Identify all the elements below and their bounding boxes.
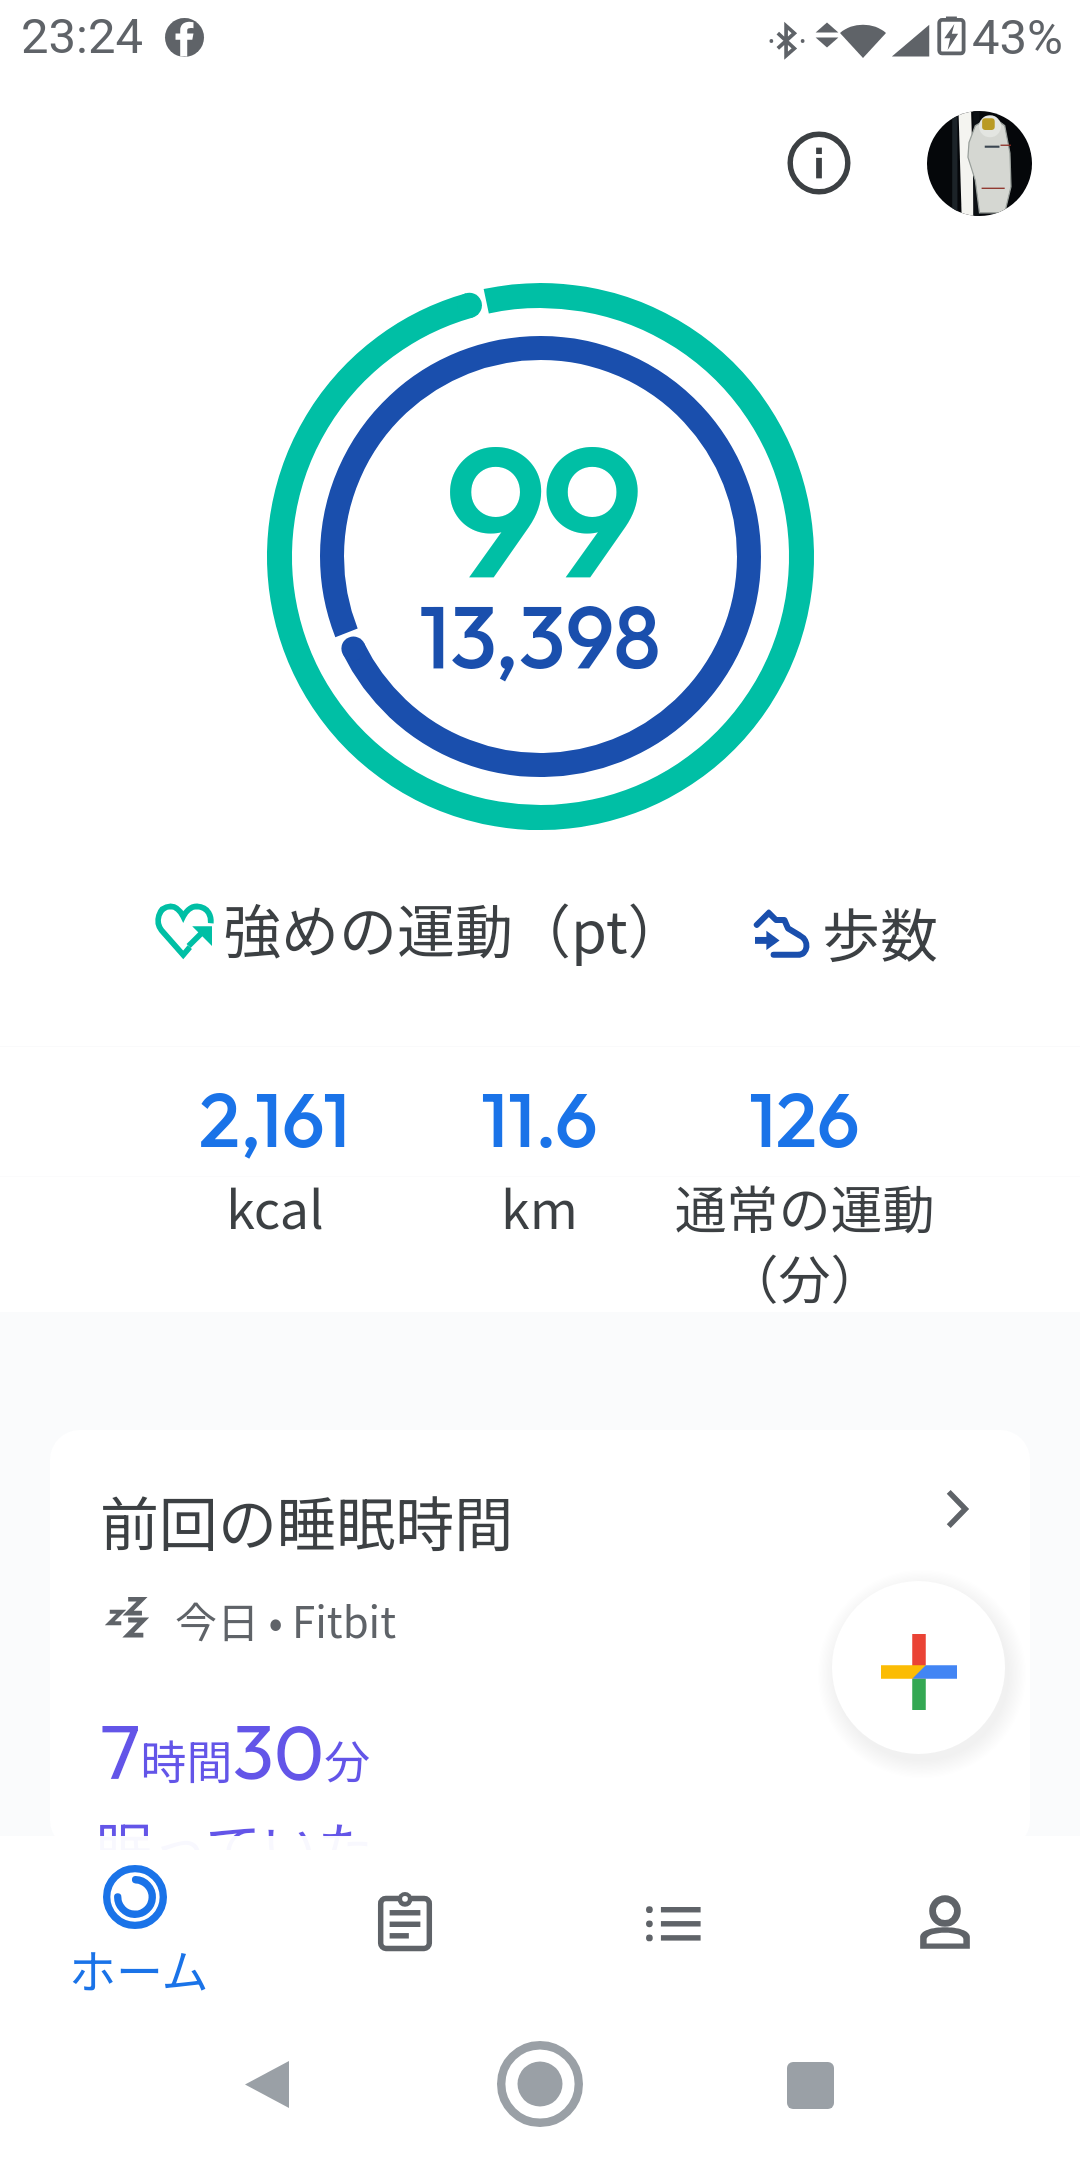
staticText: 今日 • Fitbit: [175, 1589, 397, 1650]
staticText: 7時間30分: [100, 1702, 371, 1799]
button[interactable]: Add activity: [832, 1581, 1005, 1754]
staticText: 前回の睡眠時間: [100, 1478, 514, 1563]
staticText: 43%: [972, 9, 1063, 66]
staticText: 23:24: [21, 8, 144, 65]
button[interactable]: Open sleep details: [930, 1483, 982, 1535]
staticText: ホーム: [69, 1934, 209, 2002]
staticText: 99: [444, 393, 637, 625]
button[interactable]: Recent apps: [787, 2062, 834, 2109]
staticText: km: [501, 1169, 578, 1244]
button[interactable]: Back: [245, 2060, 289, 2109]
button[interactable]: Home: [497, 2041, 583, 2127]
staticText: kcal: [226, 1169, 324, 1244]
staticText: 2,161: [199, 1071, 351, 1167]
button[interactable]: 前回の睡眠時間: [50, 1430, 1030, 1850]
staticText: 歩数: [822, 890, 939, 974]
staticText: 13,398: [419, 581, 661, 691]
button[interactable]: Journal: [270, 1836, 540, 2008]
staticText: 強めの運動（pt）: [223, 886, 686, 970]
staticText: 126: [749, 1071, 860, 1167]
button[interactable]: Profile: [927, 111, 1032, 216]
staticText: 11.6: [481, 1071, 598, 1167]
button[interactable]: Profile: [810, 1836, 1080, 2008]
button[interactable]: Browse: [540, 1836, 810, 2008]
button[interactable]: Home: [0, 1836, 270, 2008]
staticText: 通常の運動 （分）: [674, 1169, 935, 1314]
button[interactable]: Information: [769, 113, 869, 213]
staticText: 眠っていた...: [96, 1804, 420, 1850]
